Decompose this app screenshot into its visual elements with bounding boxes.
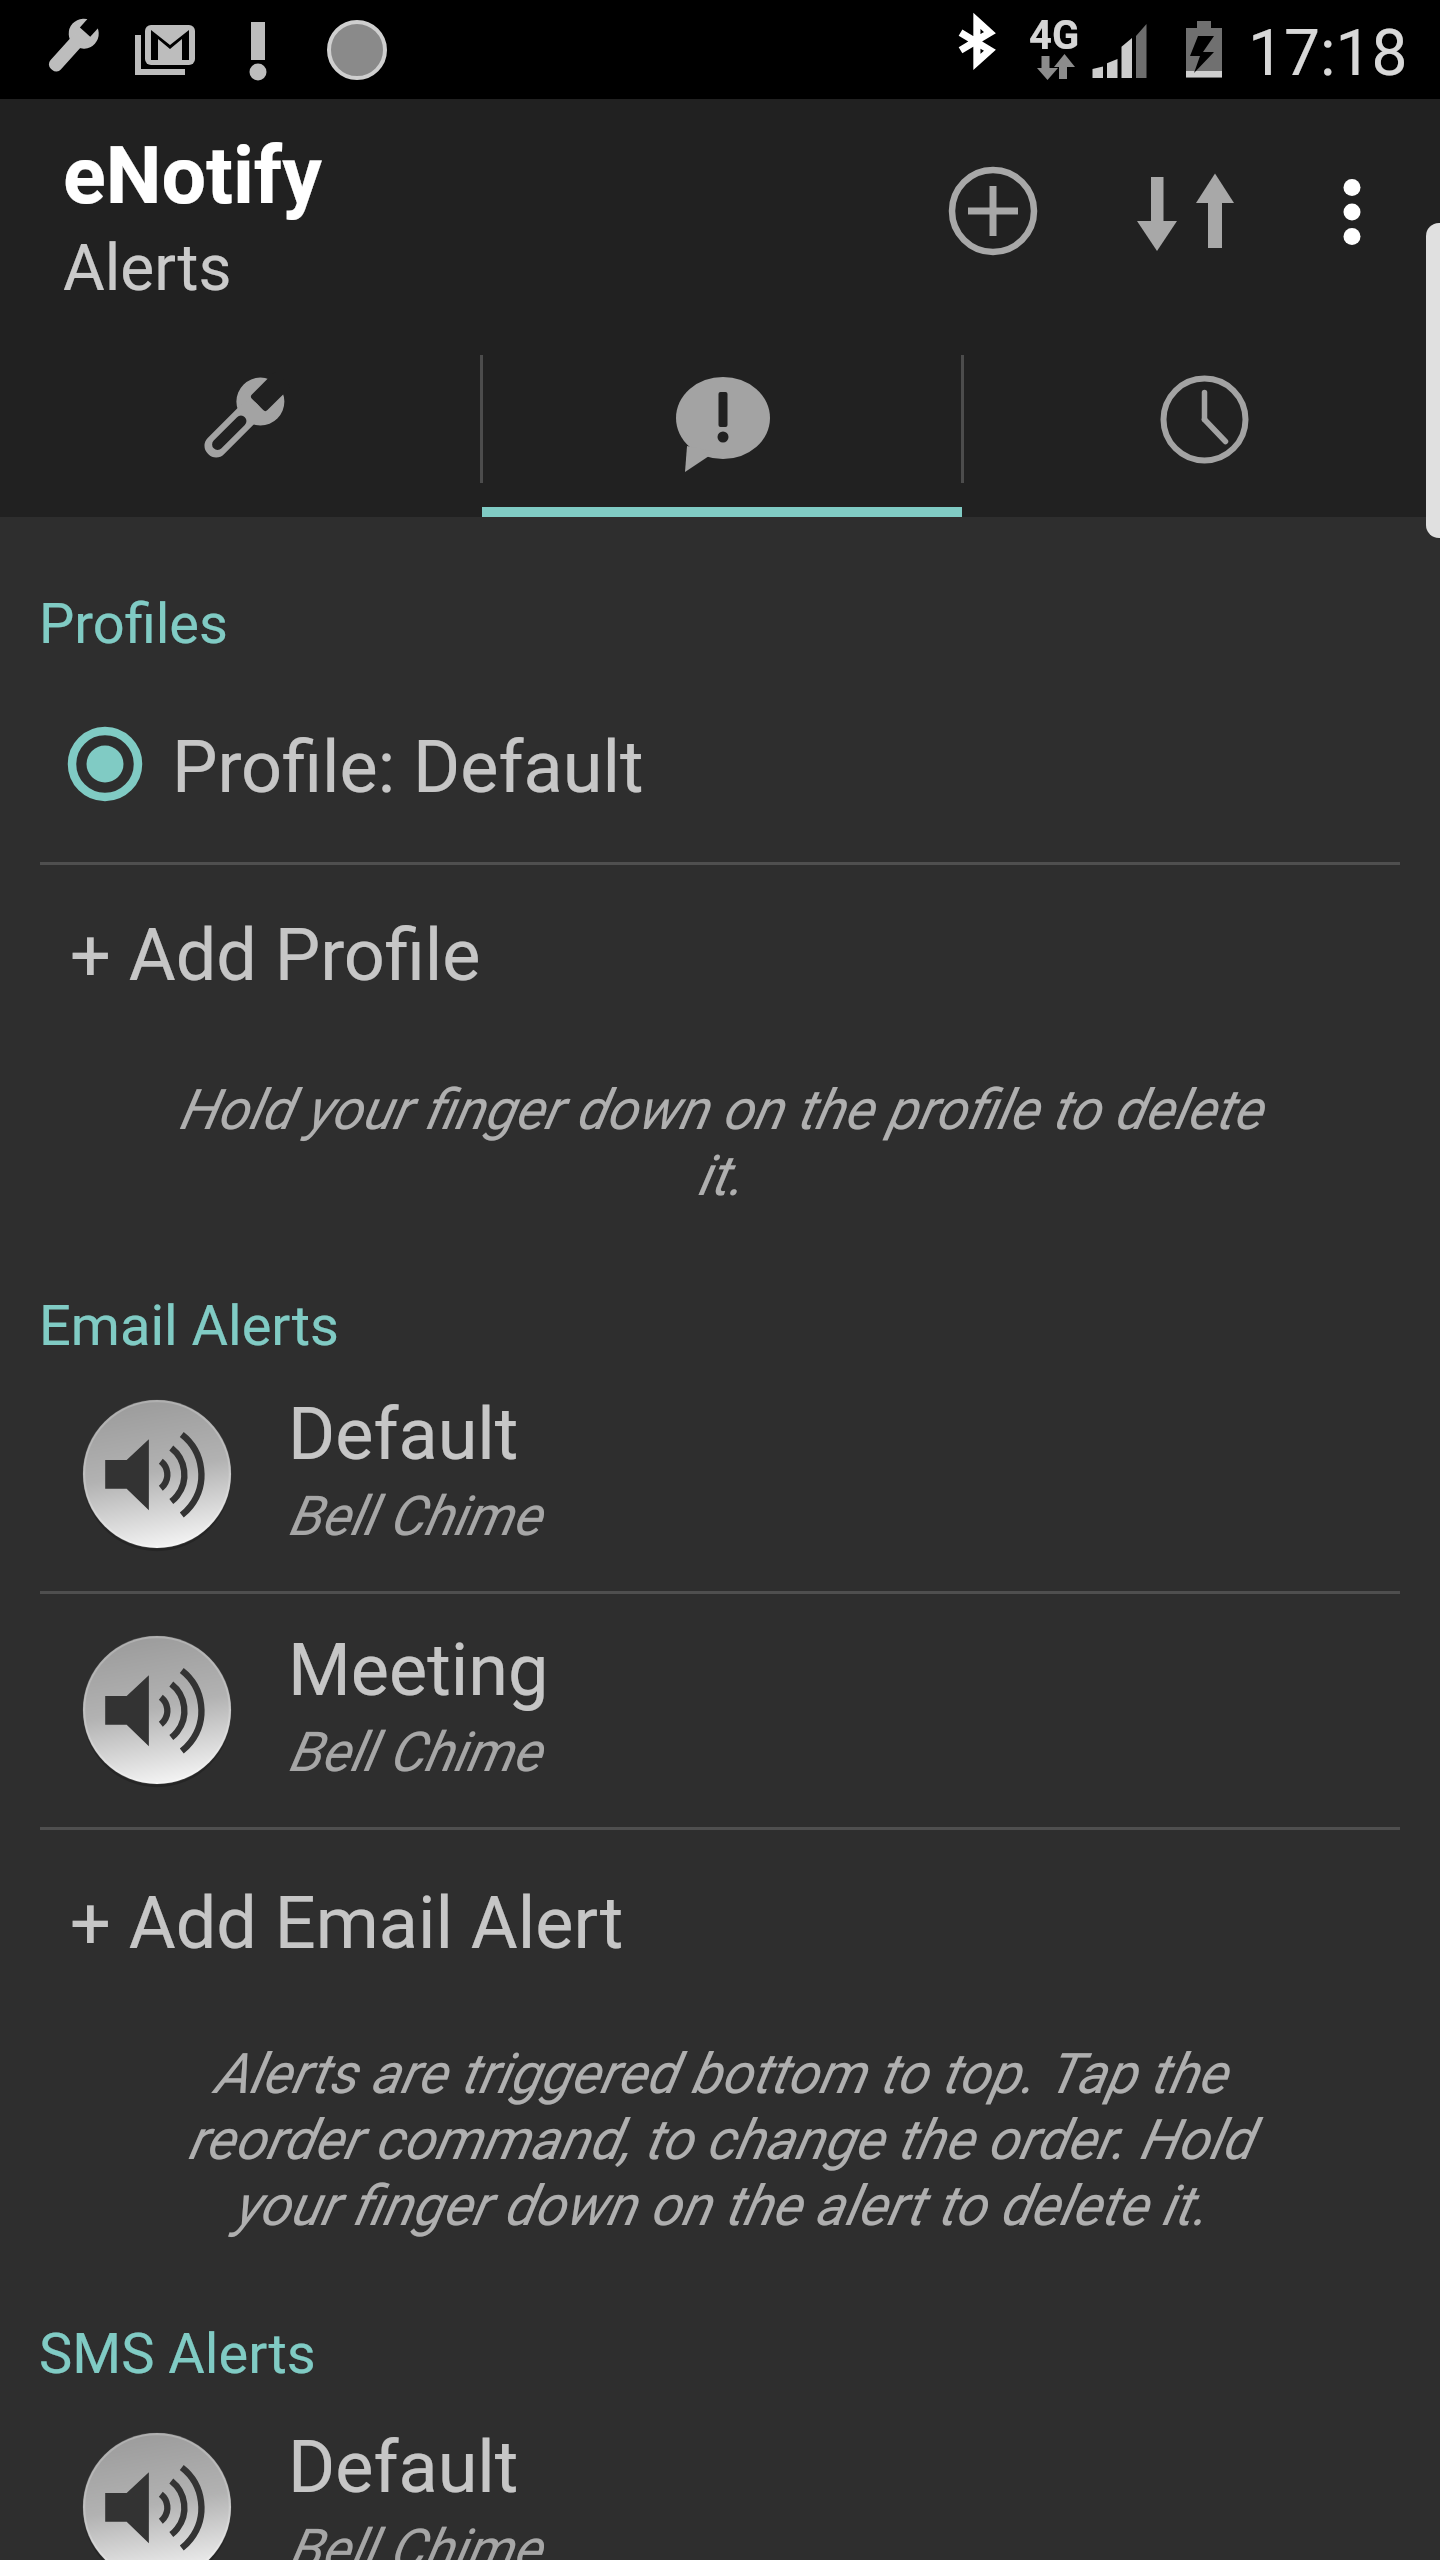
staticText: + Add Profile (70, 913, 481, 997)
staticText: 4G (1029, 12, 1080, 59)
button[interactable]: Default (0, 1376, 1440, 1572)
staticText: Alerts (63, 231, 232, 306)
button[interactable]: Meeting (0, 1612, 1440, 1808)
button[interactable]: Profile: Default (0, 700, 1440, 828)
staticText: Profiles (39, 591, 228, 657)
staticText: 17:18 (1248, 16, 1408, 91)
button[interactable]: Reorder (1120, 146, 1250, 276)
staticText: Bell Chime (288, 1720, 542, 1784)
button[interactable]: History tab (962, 330, 1440, 517)
button[interactable]: Default (0, 2409, 1440, 2560)
staticText: Profile: Default (172, 725, 644, 809)
staticText: + Add Email Alert (70, 1881, 624, 1965)
staticText: Bell Chime (288, 2517, 542, 2560)
staticText: SMS Alerts (39, 2321, 316, 2387)
staticText: Default (288, 1392, 519, 1476)
button[interactable]: + Add Email Alert (0, 1867, 1440, 1979)
staticText: Meeting (288, 1628, 549, 1712)
button[interactable]: More options (1302, 162, 1402, 262)
staticText: Alerts are triggered bottom to top. Tap … (169, 2041, 1271, 2239)
button[interactable]: Alerts tab (481, 330, 962, 517)
button[interactable]: + Add Profile (0, 899, 1440, 1011)
staticText: Email Alerts (39, 1293, 339, 1359)
staticText: Default (288, 2425, 519, 2509)
staticText: Hold your finger down on the profile to … (169, 1077, 1271, 1209)
button[interactable]: Settings tab (0, 330, 481, 517)
staticText: eNotify (63, 130, 322, 223)
button[interactable]: Add (928, 146, 1058, 276)
staticText: Bell Chime (288, 1484, 542, 1548)
